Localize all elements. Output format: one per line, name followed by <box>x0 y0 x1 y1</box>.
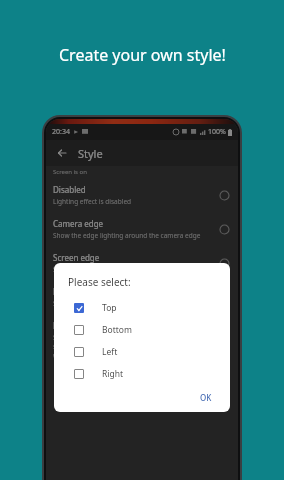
button[interactable]: Fingerprint sensor <box>217 333 231 347</box>
staticText: Disabled <box>53 184 86 195</box>
staticText: Top <box>102 302 117 314</box>
staticText: Screen is on <box>53 168 87 176</box>
button[interactable]: Left <box>68 341 218 363</box>
button[interactable]: Back <box>54 145 70 161</box>
staticText: 100% <box>208 127 226 137</box>
button[interactable]: OK <box>194 389 218 406</box>
button[interactable]: LED dot <box>217 290 231 304</box>
button[interactable]: Disabled <box>46 178 238 212</box>
staticText: Show a lighting effect around the finger… <box>53 333 211 360</box>
button[interactable]: LED dot <box>46 280 238 314</box>
button[interactable]: Fingerprint sensor <box>46 314 238 366</box>
staticText: Lighting effect is disabled <box>53 197 132 206</box>
staticText: LED dot <box>53 286 83 297</box>
staticText: Show the edge lighting around the camera… <box>53 231 201 240</box>
staticText: Style <box>78 146 103 161</box>
staticText: Fingerprint sensor <box>53 320 123 331</box>
button[interactable]: Top <box>68 297 218 319</box>
staticText: Bottom <box>102 324 132 336</box>
staticText: Please select: <box>68 275 131 289</box>
staticText: Left <box>102 346 118 358</box>
button[interactable]: Screen edge <box>217 256 231 270</box>
staticText: Camera edge <box>53 218 104 229</box>
staticText: OK <box>200 392 212 403</box>
staticText: Show the lighting effect at the screen e… <box>53 265 187 274</box>
button[interactable]: Disabled <box>217 188 231 202</box>
button[interactable]: Bottom <box>68 319 218 341</box>
button[interactable]: Camera edge <box>217 222 231 236</box>
staticText: 20:34 <box>52 127 70 137</box>
staticText: Show a "LED" dot in the statusbar <box>53 299 156 308</box>
button[interactable]: Right <box>68 363 218 385</box>
staticText: Screen edge <box>53 252 100 263</box>
button[interactable]: Camera edge <box>46 212 238 246</box>
staticText: Right <box>102 368 124 380</box>
button[interactable]: Screen edge <box>46 246 238 280</box>
staticText: Create your own style! <box>59 44 226 66</box>
